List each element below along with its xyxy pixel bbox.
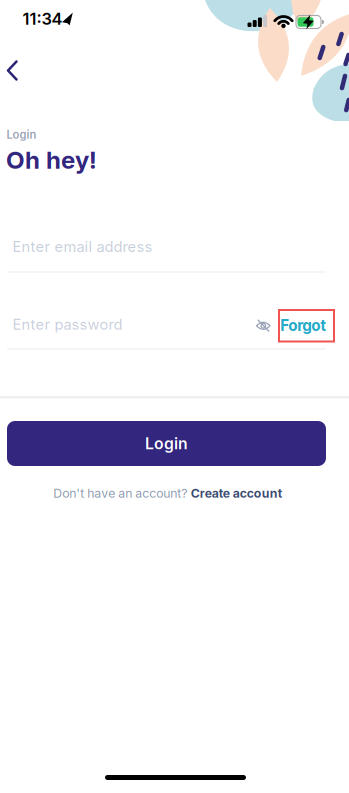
button[interactable]: Login	[7, 421, 326, 466]
staticText: Don't have an account?	[53, 486, 187, 501]
button[interactable]: Forgot	[255, 316, 325, 335]
button[interactable]: Show password	[254, 317, 272, 335]
button[interactable]: Back	[1, 59, 23, 81]
staticText: Enter password	[12, 315, 122, 333]
staticText: Login	[6, 128, 36, 141]
staticText: Oh hey!	[6, 145, 97, 174]
staticText: Enter email address	[12, 238, 152, 255]
staticText: Forgot	[280, 316, 325, 335]
staticText: Create account	[191, 486, 282, 501]
staticText: 11:34	[22, 9, 62, 29]
staticText: Login	[145, 434, 188, 453]
button[interactable]: Don't have an account?	[53, 486, 282, 501]
